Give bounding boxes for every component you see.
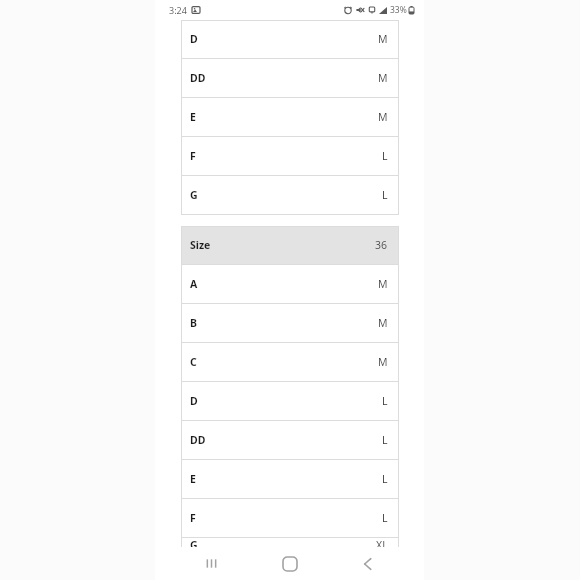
- button[interactable]: D: [181, 382, 399, 420]
- button[interactable]: E: [181, 460, 399, 498]
- button[interactable]: G: [181, 176, 399, 214]
- staticText: L: [382, 149, 388, 163]
- staticText: M: [378, 277, 388, 291]
- staticText: M: [378, 32, 388, 46]
- staticText: G: [190, 188, 198, 202]
- staticText: M: [378, 355, 388, 369]
- button[interactable]: A: [181, 265, 399, 303]
- staticText: L: [382, 188, 388, 202]
- button[interactable]: G: [181, 538, 399, 547]
- staticText: L: [382, 433, 388, 447]
- staticText: E: [190, 472, 196, 486]
- button[interactable]: F: [181, 137, 399, 175]
- staticText: A: [190, 277, 198, 291]
- staticText: B: [190, 316, 197, 330]
- staticText: C: [190, 355, 197, 369]
- staticText: 33%: [390, 4, 407, 16]
- staticText: G: [190, 538, 198, 547]
- button[interactable]: Back: [346, 547, 390, 580]
- staticText: L: [382, 472, 388, 486]
- button[interactable]: D: [181, 20, 399, 58]
- staticText: DD: [190, 71, 206, 85]
- button[interactable]: Home: [268, 547, 312, 580]
- button[interactable]: DD: [181, 59, 399, 97]
- staticText: D: [190, 32, 198, 46]
- staticText: L: [382, 394, 388, 408]
- staticText: 3:24: [169, 4, 187, 16]
- button[interactable]: E: [181, 98, 399, 136]
- button[interactable]: Recents: [189, 547, 233, 580]
- button[interactable]: DD: [181, 421, 399, 459]
- staticText: E: [190, 110, 196, 124]
- staticText: M: [378, 316, 388, 330]
- button[interactable]: B: [181, 304, 399, 342]
- staticText: L: [382, 511, 388, 525]
- button[interactable]: C: [181, 343, 399, 381]
- staticText: M: [378, 71, 388, 85]
- staticText: 36: [375, 238, 388, 252]
- button[interactable]: F: [181, 499, 399, 537]
- staticText: DD: [190, 433, 206, 447]
- staticText: Size: [190, 238, 211, 252]
- staticText: F: [190, 149, 196, 163]
- button[interactable]: Size: [181, 226, 399, 264]
- staticText: XL: [376, 538, 388, 547]
- staticText: D: [190, 394, 198, 408]
- staticText: M: [378, 110, 388, 124]
- staticText: F: [190, 511, 196, 525]
